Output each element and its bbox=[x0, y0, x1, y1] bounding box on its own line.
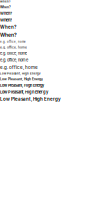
staticText: Low Pleasant, High Energy bbox=[0, 83, 44, 88]
staticText: When? bbox=[0, 24, 16, 30]
staticText: When? bbox=[0, 32, 17, 38]
staticText: Low Pleasant, High Energy bbox=[0, 96, 61, 102]
staticText: Low Pleasant, High Energy bbox=[0, 90, 48, 94]
staticText: When? bbox=[0, 18, 12, 22]
staticText: Low Pleasant, High Energy bbox=[0, 72, 41, 75]
staticText: When? bbox=[0, 0, 10, 3]
staticText: When? bbox=[0, 5, 11, 9]
staticText: e.g. office, home bbox=[0, 45, 27, 49]
staticText: Low Pleasant, High Energy bbox=[0, 77, 43, 81]
staticText: e.g. office, home bbox=[0, 40, 26, 43]
staticText: When? bbox=[0, 11, 12, 16]
staticText: e.g. office, home bbox=[0, 51, 27, 56]
staticText: e.g. office, home bbox=[0, 64, 38, 70]
staticText: e.g. office, home bbox=[0, 58, 28, 62]
